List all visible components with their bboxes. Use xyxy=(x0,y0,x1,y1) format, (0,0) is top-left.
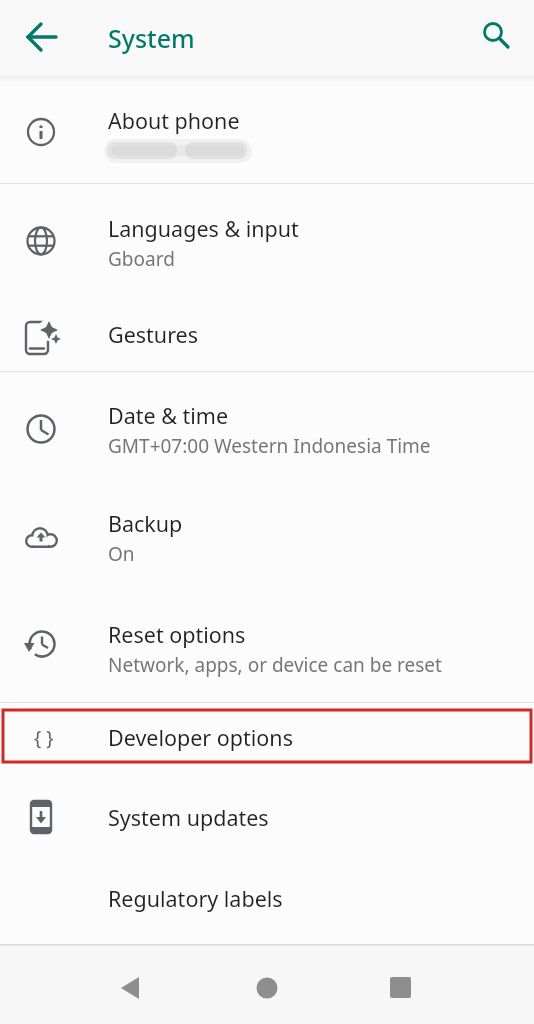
button[interactable]: System updates xyxy=(0,772,534,862)
staticText: { } xyxy=(34,725,54,751)
staticText: GMT+07:00 Western Indonesia Time xyxy=(108,433,431,459)
button[interactable] xyxy=(373,961,427,1007)
staticText: Regulatory labels xyxy=(108,884,283,913)
staticText: Gboard xyxy=(108,246,175,272)
button[interactable]: Date & time xyxy=(0,372,534,480)
staticText: On xyxy=(108,541,135,567)
button[interactable] xyxy=(240,961,294,1007)
staticText: Date & time xyxy=(108,401,229,430)
button[interactable]: Reset options xyxy=(0,588,534,702)
staticText: Developer options xyxy=(108,723,293,752)
button[interactable]: About phone xyxy=(0,82,534,183)
staticText: Gestures xyxy=(108,320,198,349)
button[interactable] xyxy=(106,961,160,1007)
button[interactable] xyxy=(470,8,524,62)
staticText: About phone xyxy=(108,106,240,135)
button[interactable]: Backup xyxy=(0,480,534,588)
staticText: Reset options xyxy=(108,620,246,649)
button[interactable]: Gestures xyxy=(0,296,534,373)
button[interactable]: { } xyxy=(0,703,534,772)
staticText: Backup xyxy=(108,509,183,538)
staticText: System xyxy=(108,21,195,55)
button[interactable]: Regulatory labels xyxy=(0,858,534,938)
button[interactable] xyxy=(14,10,68,64)
staticText: System updates xyxy=(108,803,269,832)
button[interactable]: Languages & input xyxy=(0,184,534,294)
staticText: Network, apps, or device can be reset xyxy=(108,652,442,678)
staticText: Languages & input xyxy=(108,214,299,243)
